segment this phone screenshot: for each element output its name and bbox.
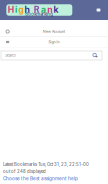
staticText: Sign In <box>48 40 59 44</box>
staticText: g <box>18 4 23 15</box>
staticText: n <box>47 4 52 15</box>
staticText: Bookmarking <box>25 12 53 17</box>
button[interactable]: Sign In <box>0 37 108 47</box>
staticText: i <box>15 4 17 15</box>
staticText: Search <box>5 53 16 58</box>
staticText: H <box>8 4 14 15</box>
staticText: Latest Bookmarks Tue, Oct 31, 23, 22:51-… <box>3 162 89 167</box>
staticText: a <box>41 4 46 15</box>
button[interactable]: Menu <box>93 3 104 17</box>
staticText: out of 248 displayed <box>3 169 46 174</box>
staticText: k <box>53 4 58 15</box>
button[interactable]: New Account <box>0 26 108 36</box>
staticText: Choose the Best assignment help <box>3 176 78 181</box>
staticText: R <box>34 4 40 15</box>
staticText <box>31 4 33 15</box>
staticText: New Account <box>43 29 65 34</box>
button[interactable]: Choose the Best assignment help <box>3 176 78 181</box>
staticText: h <box>24 4 29 15</box>
button[interactable]: Search <box>91 51 102 59</box>
